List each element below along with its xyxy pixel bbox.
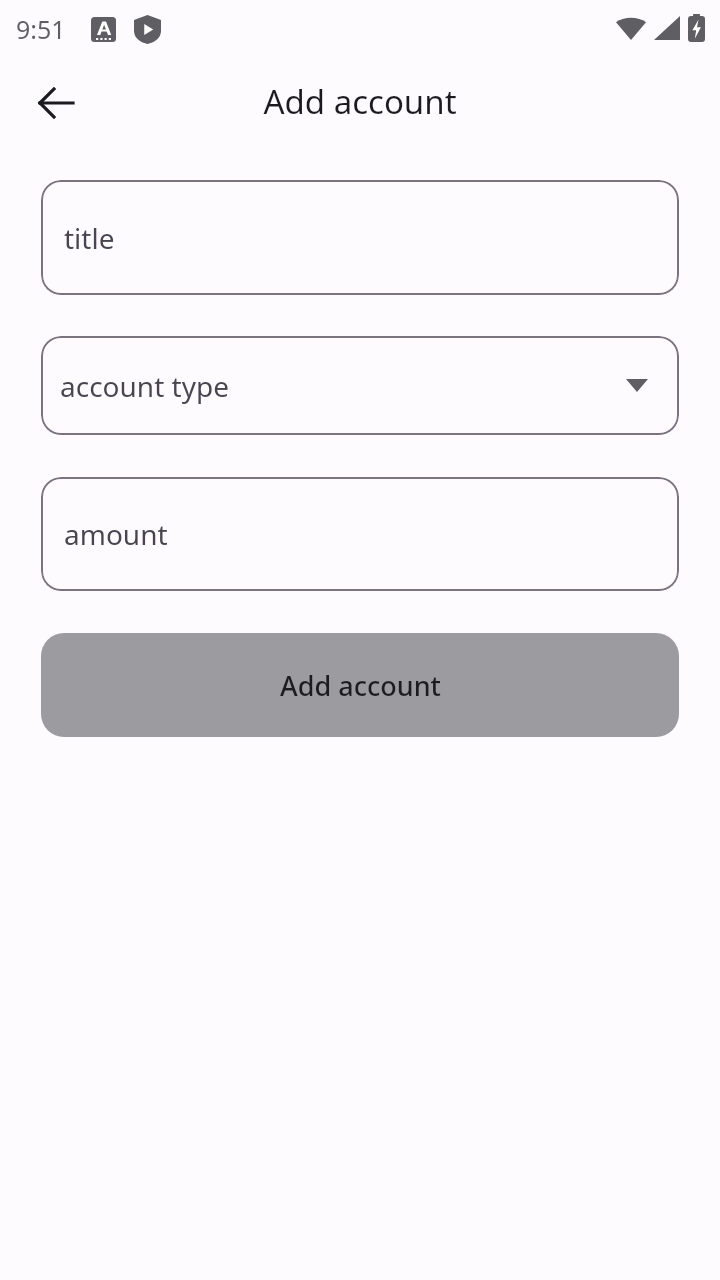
button[interactable]: Back [24, 71, 88, 135]
button[interactable]: account type [41, 336, 679, 435]
button[interactable]: title [41, 180, 679, 295]
staticText: amount [64, 515, 168, 553]
staticText: title [64, 219, 115, 257]
staticText: account type [60, 367, 229, 405]
button[interactable]: Add account [41, 633, 679, 737]
staticText: 9:51 [16, 12, 66, 46]
staticText: Add account [280, 667, 441, 704]
button[interactable]: amount [41, 477, 679, 591]
staticText: Add account [0, 79, 720, 124]
